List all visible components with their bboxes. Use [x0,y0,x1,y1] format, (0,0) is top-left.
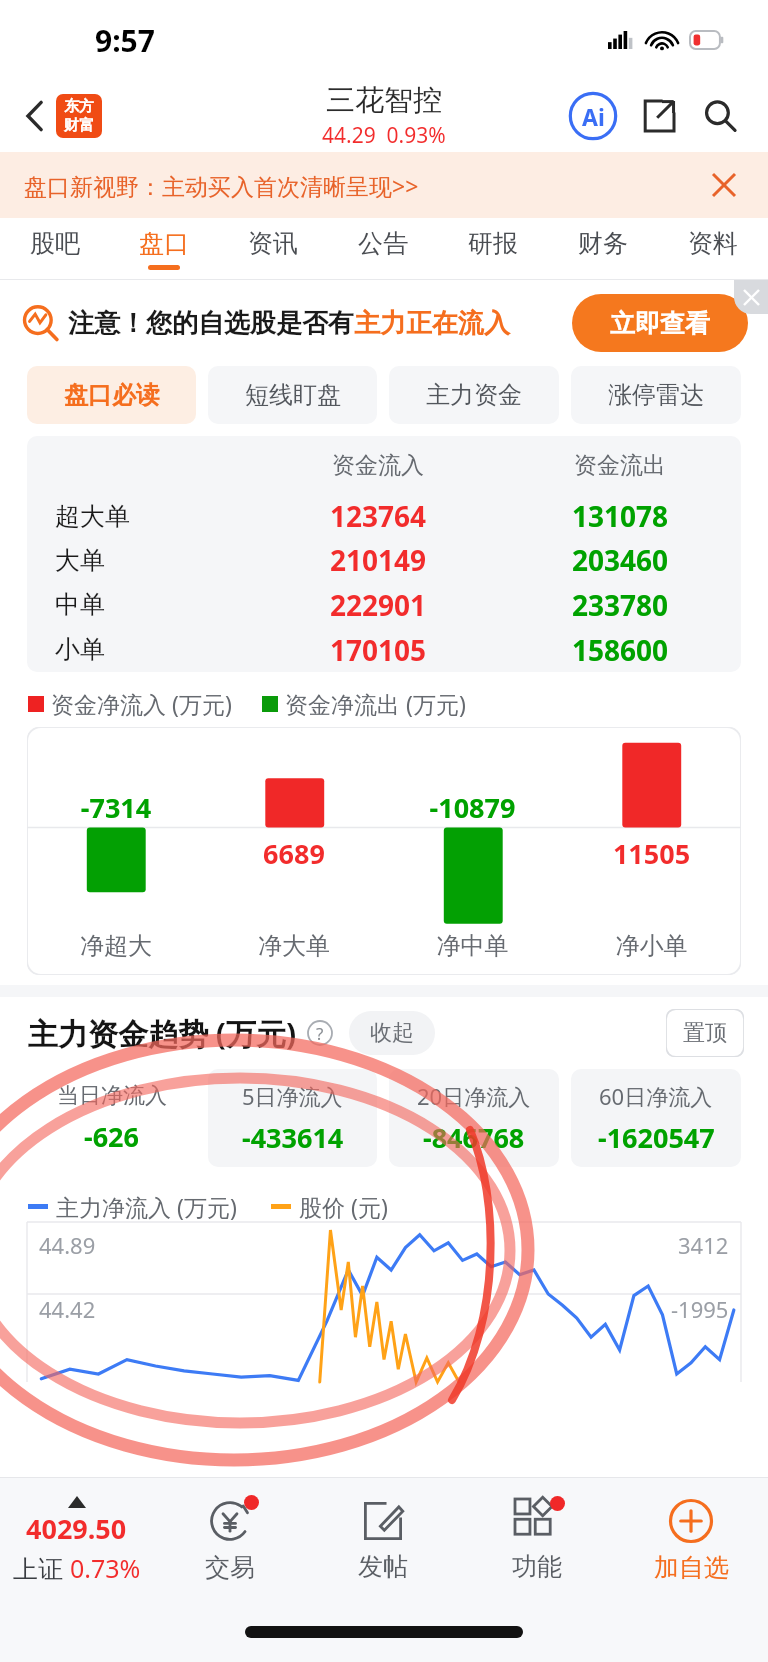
button[interactable]: Search [694,90,746,142]
button[interactable]: 5日净流入 [208,1069,377,1167]
button[interactable]: 立即查看 [572,294,748,352]
button[interactable]: 超大单 [27,494,741,538]
staticText: 股价 (元) [299,1191,388,1222]
button[interactable]: 研报 [438,218,548,280]
button[interactable]: 涨停雷达 [571,366,741,424]
staticText: -846768 [423,1119,525,1156]
staticText: -10879 [383,789,562,826]
staticText: 发帖 [358,1551,408,1582]
staticText: -1620547 [598,1119,715,1156]
button[interactable]: 功能 [460,1478,614,1602]
staticText: 主力资金趋势 (万元) [28,1013,297,1054]
staticText: -7314 [27,789,205,826]
staticText: 210149 [257,541,499,579]
button[interactable]: 资讯 [218,218,328,280]
button[interactable]: Close banner [702,163,746,207]
staticText: 主力资金 [426,380,522,410]
staticText: 涨停雷达 [608,380,704,410]
button[interactable]: 置顶 [666,1009,744,1057]
staticText: 中单 [55,589,257,620]
staticText: 44.89 [39,1230,96,1260]
button[interactable]: Help [305,1018,335,1048]
button[interactable]: 资料 [658,218,768,280]
staticText: 净小单 [562,931,741,961]
button[interactable]: 注意！您的自选股是否有 [22,280,748,366]
button[interactable]: 大单 [27,538,741,582]
staticText: 功能 [512,1551,562,1582]
staticText: 资讯 [248,228,298,259]
button[interactable]: 20日净流入 [389,1069,559,1167]
button[interactable]: Back [18,88,108,144]
staticText: 短线盯盘 [245,380,341,410]
staticText: 资料 [688,228,738,259]
staticText: 置顶 [683,1019,727,1047]
staticText: 上证 [13,1551,70,1585]
button[interactable]: 小单 [27,627,741,672]
staticText: -626 [84,1118,139,1155]
staticText: 超大单 [55,501,257,532]
staticText: 财富 [64,116,94,135]
button[interactable]: 60日净流入 [571,1069,741,1167]
staticText: 立即查看 [610,308,710,339]
staticText: 222901 [257,586,499,624]
staticText: 158600 [499,631,741,669]
button[interactable]: 盘口必读 [27,366,196,424]
staticText: Ai [582,101,605,132]
staticText: 203460 [499,541,741,579]
staticText: 盘口新视野：主动买入首次清晰呈现>> [24,170,419,201]
staticText: 净超大 [27,931,205,961]
button[interactable]: 发帖 [306,1478,460,1602]
button[interactable]: 收起 [349,1011,435,1055]
staticText: 三花智控 [326,82,442,119]
staticText: 小单 [55,634,257,665]
staticText: 233780 [499,586,741,624]
staticText: 主力正在流入 [354,307,510,340]
button[interactable]: 财务 [548,218,658,280]
staticText: 20日净流入 [417,1081,531,1111]
staticText: 131078 [499,497,741,535]
staticText: 主力净流入 (万元) [56,1191,237,1222]
staticText: 净大单 [205,931,383,961]
staticText: 9:57 [95,20,155,61]
staticText: 4029.50 [26,1510,127,1547]
staticText: 0.73% [70,1551,141,1585]
staticText: 44.42 [39,1294,96,1324]
button[interactable]: Share [634,91,684,141]
staticText: 5日净流入 [242,1081,343,1111]
staticText: 公告 [358,228,408,259]
staticText: 加自选 [654,1552,729,1583]
staticText: 股吧 [30,228,80,259]
staticText: 资金净流出 (万元) [285,688,466,719]
button[interactable]: 4029.50 [0,1478,153,1602]
staticText: 170105 [257,631,499,669]
button[interactable]: 交易 [153,1478,306,1602]
button[interactable]: 盘口 [109,218,218,280]
staticText: 东方 [64,97,94,116]
staticText: 资金流入 [257,451,499,480]
staticText: 财务 [578,228,628,259]
button[interactable]: 盘口新视野：主动买入首次清晰呈现>> [0,152,768,218]
button[interactable]: 公告 [328,218,438,280]
button[interactable]: Close ad [734,280,768,314]
button[interactable]: 股吧 [0,218,109,280]
staticText: 3412 [678,1230,729,1260]
button[interactable]: AI assistant [566,89,620,143]
button[interactable]: 加自选 [614,1478,768,1602]
staticText: 注意！您的自选股是否有 [68,307,354,340]
button[interactable]: 当日净流入 [27,1069,196,1167]
staticText: 收起 [370,1019,414,1047]
button[interactable]: 中单 [27,582,741,627]
staticText: 研报 [468,228,518,259]
button[interactable]: 主力资金 [389,366,559,424]
staticText: 资金净流入 (万元) [51,688,232,719]
staticText: 6689 [205,835,383,872]
staticText: 交易 [205,1552,255,1583]
button[interactable]: 短线盯盘 [208,366,377,424]
staticText: 123764 [257,497,499,535]
staticText: 60日净流入 [599,1081,713,1111]
staticText: 当日净流入 [57,1082,167,1110]
staticText: 盘口必读 [64,380,160,410]
staticText: 大单 [55,545,257,576]
staticText: 44.29 0.93% [322,121,446,150]
staticText: 盘口 [139,228,189,259]
